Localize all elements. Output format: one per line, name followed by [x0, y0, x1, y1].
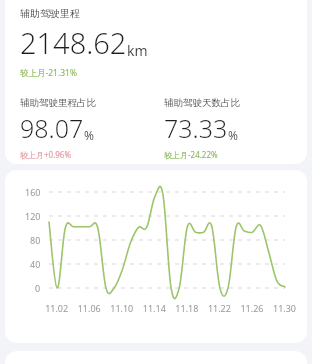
staticText: km: [127, 41, 148, 60]
staticText: 辅助驾驶天数占比: [164, 97, 240, 109]
staticText: 98.07: [20, 111, 84, 145]
staticText: 较上月-24.22%: [164, 149, 218, 160]
other: Assisted driving mileage chart: [5, 170, 307, 343]
button[interactable]: 辅助驾驶里程: [5, 0, 307, 164]
staticText: 2148.62: [20, 23, 127, 62]
staticText: %: [84, 127, 94, 143]
staticText: 辅助驾驶里程占比: [20, 97, 96, 109]
staticText: 73.33: [164, 111, 228, 145]
button[interactable]: Assisted driving mileage chart: [5, 170, 307, 343]
staticText: %: [228, 127, 238, 143]
staticText: 较上月+0.96%: [20, 149, 72, 160]
staticText: 较上月-21.31%: [20, 67, 78, 79]
staticText: 辅助驾驶里程: [20, 7, 80, 20]
